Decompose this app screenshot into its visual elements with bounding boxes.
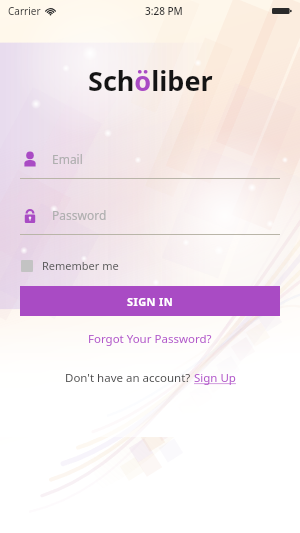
button[interactable]: Email icon bbox=[20, 146, 280, 172]
staticText: Carrier bbox=[8, 4, 41, 18]
staticText: Remember me bbox=[42, 258, 119, 273]
staticText: Password bbox=[52, 207, 107, 223]
staticText: SIGN IN bbox=[127, 294, 174, 309]
staticText: 3:28 PM bbox=[145, 4, 183, 18]
other: Email icon bbox=[20, 149, 40, 169]
button[interactable]: Password icon bbox=[20, 202, 280, 228]
other: Password icon bbox=[20, 205, 40, 225]
button[interactable]: Remember me bbox=[20, 256, 120, 275]
button[interactable]: SIGN IN bbox=[20, 286, 280, 316]
staticText: Don't have an account? bbox=[65, 370, 194, 386]
button[interactable]: Sign Up bbox=[194, 370, 236, 386]
staticText: Schöliber bbox=[88, 62, 213, 99]
staticText: Sign Up bbox=[194, 370, 236, 386]
staticText: Email bbox=[52, 151, 83, 167]
staticText: Forgot Your Password? bbox=[88, 331, 212, 347]
button[interactable]: Forgot Your Password? bbox=[78, 328, 222, 350]
